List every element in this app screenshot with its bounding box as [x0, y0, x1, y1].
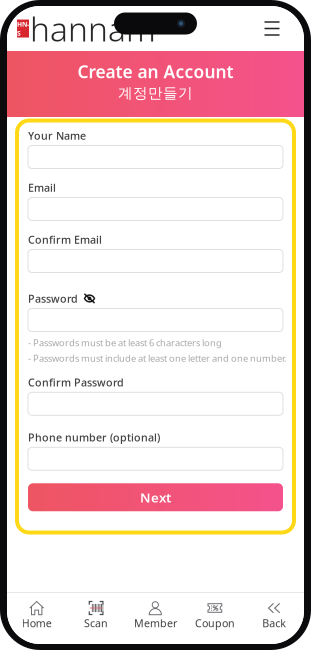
- staticText: Email: [28, 180, 56, 195]
- staticText: Your Name: [28, 128, 86, 143]
- button[interactable]: Coupon: [185, 600, 245, 629]
- button[interactable]: Member: [126, 600, 185, 629]
- staticText: Scan: [84, 616, 108, 630]
- staticText: Next: [140, 488, 171, 506]
- staticText: 계정만들기: [118, 84, 193, 102]
- button[interactable]: Back: [245, 600, 304, 629]
- staticText: Phone number (optional): [28, 430, 160, 444]
- staticText: HNS: [17, 20, 29, 37]
- staticText: Member: [134, 616, 177, 630]
- staticText: - Passwords must be at least 6 character…: [28, 336, 222, 349]
- button[interactable]: Menu: [257, 12, 287, 44]
- staticText: Confirm Password: [28, 375, 124, 389]
- staticText: - Passwords must include at least one le…: [28, 352, 287, 364]
- staticText: Coupon: [195, 616, 235, 630]
- button[interactable]: Home: [7, 600, 66, 629]
- button[interactable]: Scan: [66, 600, 126, 629]
- staticText: hannam: [30, 6, 156, 51]
- staticText: Back: [262, 616, 286, 630]
- staticText: Password: [28, 291, 78, 306]
- button[interactable]: Next: [28, 483, 283, 511]
- staticText: Create an Account: [77, 60, 233, 83]
- staticText: Confirm Email: [28, 232, 102, 247]
- staticText: Home: [22, 616, 52, 630]
